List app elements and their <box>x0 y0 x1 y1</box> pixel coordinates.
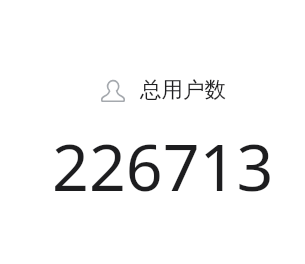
button[interactable]: Total users <box>52 74 274 210</box>
staticText: 总用户数 <box>140 76 226 103</box>
staticText: 226713 <box>52 122 274 210</box>
other: Total users <box>101 80 125 102</box>
